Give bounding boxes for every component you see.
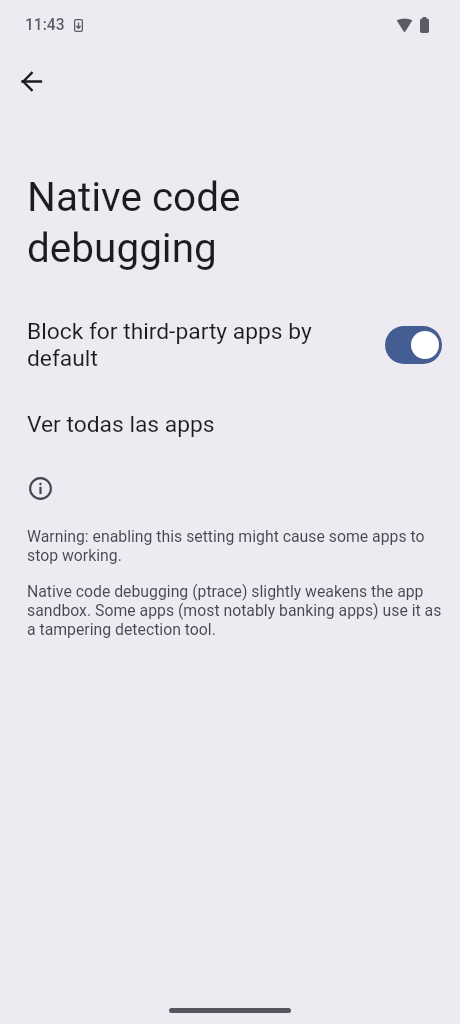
button[interactable]: Block for third-party apps by default	[385, 326, 442, 364]
button[interactable]: Information	[25, 473, 55, 503]
button[interactable]: Ver todas las apps	[0, 407, 460, 442]
staticText: Warning: enabling this setting might cau…	[27, 527, 442, 565]
staticText: Block for third-party apps by default	[27, 318, 371, 372]
staticText: Native code debugging (ptrace) slightly …	[27, 582, 442, 639]
button[interactable]: Back	[9, 59, 53, 103]
staticText: Native code debugging	[27, 173, 241, 272]
button[interactable]: Block for third-party apps by default	[0, 313, 460, 377]
staticText: 11:43	[25, 16, 65, 34]
